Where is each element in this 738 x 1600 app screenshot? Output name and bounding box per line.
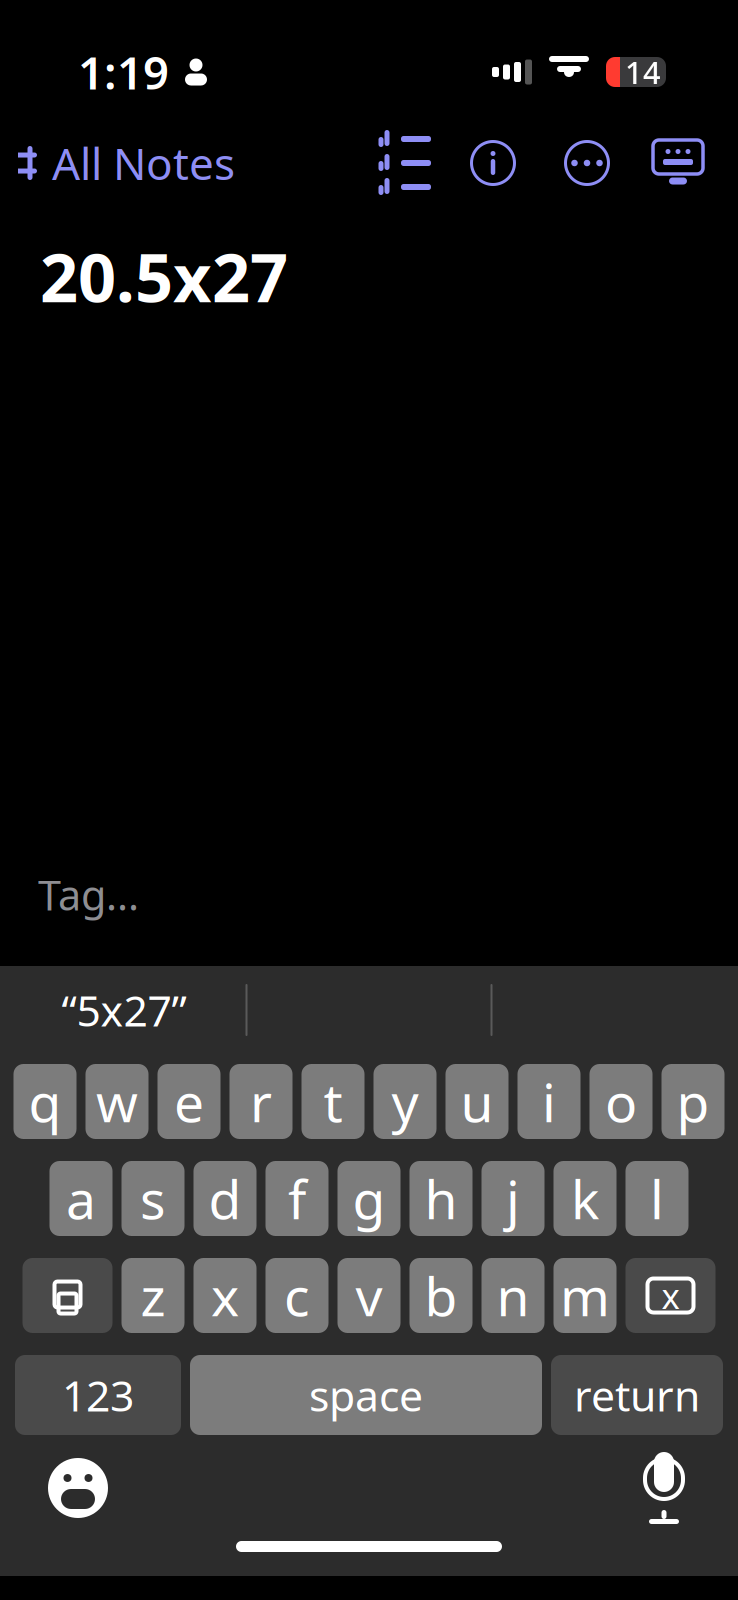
button[interactable]: z bbox=[121, 1258, 184, 1333]
staticText: b bbox=[424, 1260, 457, 1331]
button[interactable]: Emoji bbox=[0, 1440, 108, 1536]
staticText: v bbox=[355, 1260, 382, 1331]
staticText: g bbox=[352, 1163, 385, 1234]
button[interactable]: u bbox=[445, 1064, 508, 1139]
button[interactable]: k bbox=[553, 1161, 616, 1236]
button[interactable]: g bbox=[337, 1161, 400, 1236]
button[interactable]: 123 bbox=[15, 1355, 181, 1435]
button[interactable]: e bbox=[157, 1064, 220, 1139]
button[interactable]: “5x27” bbox=[2, 966, 245, 1054]
button[interactable]: Delete bbox=[625, 1258, 715, 1333]
button[interactable]: Info bbox=[446, 140, 540, 186]
staticText: f bbox=[288, 1163, 306, 1234]
staticText: x bbox=[211, 1260, 239, 1331]
button[interactable]: p bbox=[661, 1064, 724, 1139]
staticText: k bbox=[571, 1163, 599, 1234]
button[interactable]: o bbox=[589, 1064, 652, 1139]
button[interactable]: w bbox=[85, 1064, 148, 1139]
staticText: j bbox=[506, 1163, 520, 1234]
button[interactable]: return bbox=[551, 1355, 723, 1435]
staticText: o bbox=[605, 1066, 637, 1137]
staticText: q bbox=[28, 1066, 61, 1137]
staticText: 14 bbox=[625, 52, 661, 92]
button[interactable]: t bbox=[301, 1064, 364, 1139]
staticText: 20.5x27 bbox=[40, 232, 288, 320]
button[interactable]: h bbox=[409, 1161, 472, 1236]
button[interactable]: b bbox=[409, 1258, 472, 1333]
staticText: “5x27” bbox=[61, 982, 186, 1038]
button[interactable]: x bbox=[193, 1258, 256, 1333]
staticText: e bbox=[174, 1066, 204, 1137]
staticText: y bbox=[391, 1066, 418, 1137]
staticText: i bbox=[542, 1066, 556, 1137]
staticText: 123 bbox=[62, 1367, 134, 1423]
button[interactable]: c bbox=[265, 1258, 328, 1333]
button[interactable]: l bbox=[625, 1161, 688, 1236]
button[interactable]: f bbox=[265, 1161, 328, 1236]
staticText: m bbox=[560, 1260, 610, 1331]
button[interactable]: All Notes bbox=[0, 122, 235, 204]
staticText: l bbox=[650, 1163, 664, 1234]
staticText: c bbox=[284, 1260, 310, 1331]
staticText: 1:19 bbox=[78, 42, 169, 102]
button[interactable]: Dictation bbox=[642, 1435, 738, 1541]
button[interactable]: q bbox=[13, 1064, 76, 1139]
staticText: n bbox=[496, 1260, 529, 1331]
staticText: d bbox=[208, 1163, 241, 1234]
staticText: x bbox=[661, 1272, 679, 1318]
button[interactable]: Tag... bbox=[0, 867, 738, 966]
staticText: w bbox=[96, 1066, 138, 1137]
button[interactable]: Shift bbox=[22, 1258, 112, 1333]
staticText: h bbox=[424, 1163, 457, 1234]
staticText: u bbox=[460, 1066, 493, 1137]
button[interactable]: a bbox=[49, 1161, 112, 1236]
button[interactable]: j bbox=[481, 1161, 544, 1236]
button[interactable]: space bbox=[190, 1355, 542, 1435]
staticText: return bbox=[574, 1367, 700, 1423]
button[interactable]: i bbox=[517, 1064, 580, 1139]
staticText: s bbox=[140, 1163, 166, 1234]
staticText: All Notes bbox=[52, 134, 235, 192]
button[interactable]: r bbox=[229, 1064, 292, 1139]
staticText: z bbox=[140, 1260, 165, 1331]
button[interactable]: Hide Keyboard bbox=[634, 138, 722, 188]
button[interactable]: d bbox=[193, 1161, 256, 1236]
staticText: space bbox=[309, 1367, 423, 1423]
staticText: t bbox=[323, 1066, 342, 1137]
button[interactable]: m bbox=[553, 1258, 616, 1333]
staticText: r bbox=[250, 1066, 272, 1137]
staticText: Tag... bbox=[38, 867, 139, 922]
button[interactable]: s bbox=[121, 1161, 184, 1236]
button[interactable]: n bbox=[481, 1258, 544, 1333]
button[interactable]: y bbox=[373, 1064, 436, 1139]
button[interactable]: v bbox=[337, 1258, 400, 1333]
button[interactable]: Checklist bbox=[362, 140, 446, 186]
button[interactable]: More bbox=[540, 140, 634, 186]
staticText: p bbox=[676, 1066, 709, 1137]
staticText: a bbox=[66, 1163, 96, 1234]
